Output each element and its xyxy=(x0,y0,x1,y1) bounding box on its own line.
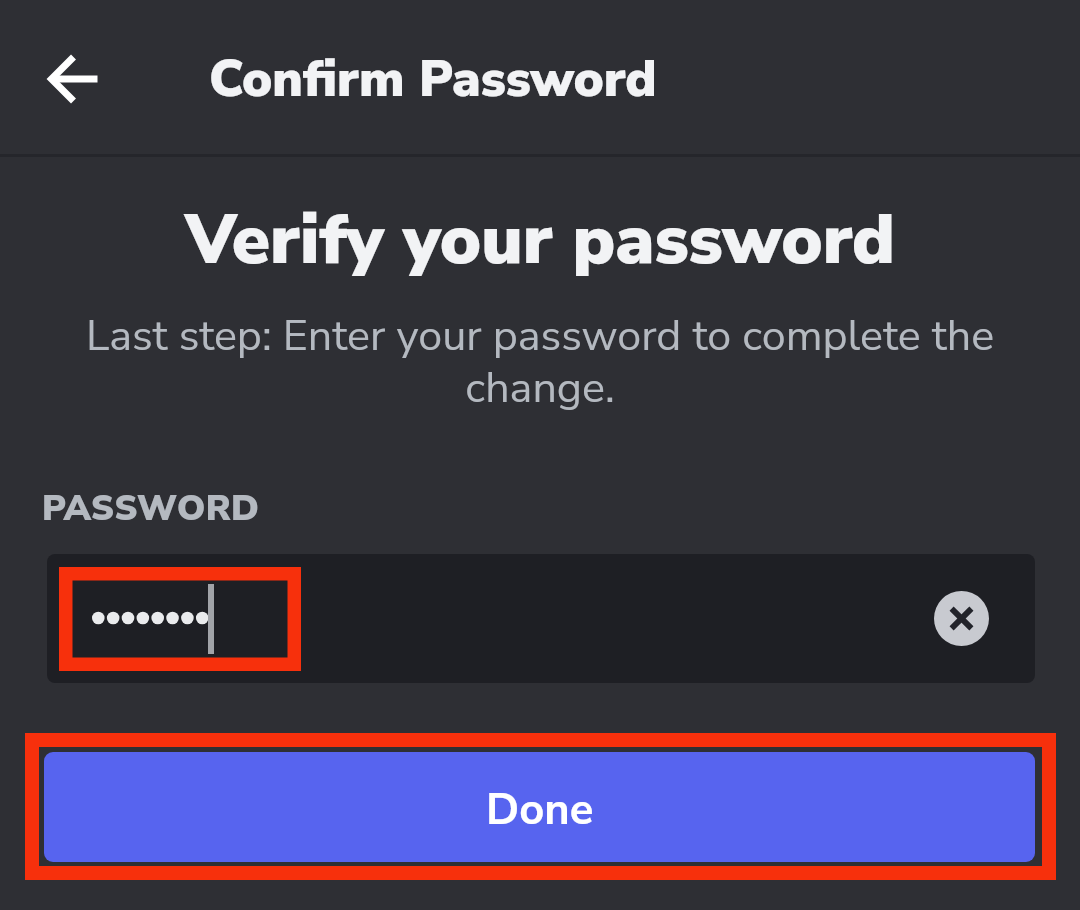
button[interactable]: Clear password xyxy=(47,554,1035,683)
staticText: Confirm Password xyxy=(209,45,657,114)
staticText: PASSWORD xyxy=(42,484,260,532)
button[interactable]: Clear password xyxy=(934,591,989,646)
staticText: Last step: Enter your password to comple… xyxy=(80,307,1000,417)
button[interactable]: Navigate back xyxy=(30,35,118,123)
staticText: Verify your password xyxy=(0,193,1080,287)
staticText: Done xyxy=(486,780,594,839)
button[interactable]: Done xyxy=(44,752,1035,862)
